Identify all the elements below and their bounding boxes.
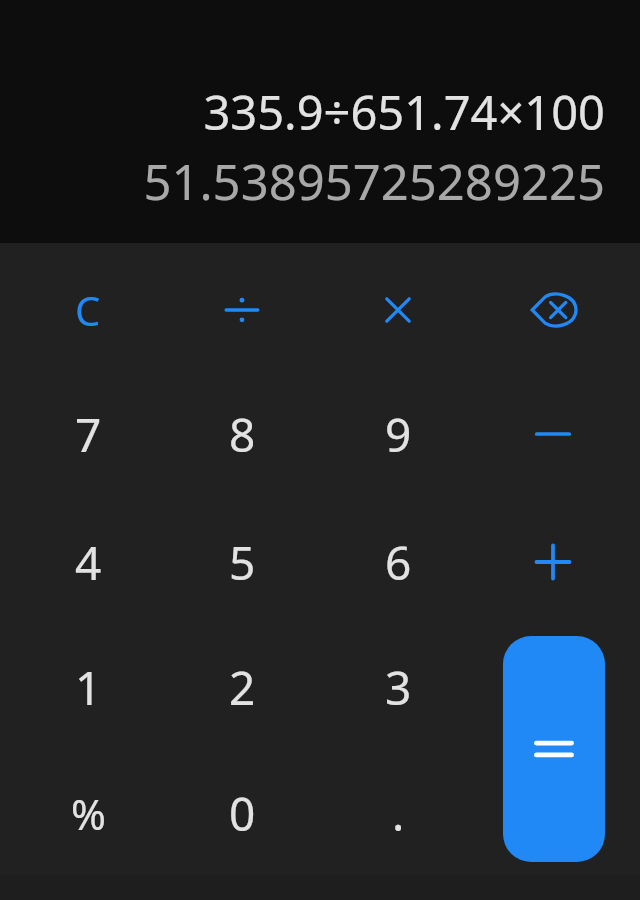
staticText: 2 xyxy=(229,656,256,719)
staticText: 9 xyxy=(385,403,412,466)
button[interactable]: 5 xyxy=(167,506,317,618)
staticText: C xyxy=(75,283,101,337)
button[interactable]: Backspace xyxy=(478,254,628,366)
button[interactable]: 2 xyxy=(167,631,317,743)
staticText: 3 xyxy=(385,656,412,719)
button[interactable]: 1 xyxy=(13,631,163,743)
button[interactable]: Minus xyxy=(478,378,628,490)
button[interactable]: 0 xyxy=(167,757,317,869)
staticText: 4 xyxy=(75,531,102,594)
staticText: % xyxy=(71,785,106,842)
button[interactable]: 9 xyxy=(323,378,473,490)
staticText: 8 xyxy=(229,403,256,466)
button[interactable]: 7 xyxy=(13,378,163,490)
staticText: 1 xyxy=(75,656,102,719)
button[interactable]: Plus xyxy=(478,506,628,618)
staticText: 51.53895725289225 xyxy=(16,148,605,215)
button[interactable]: 3 xyxy=(323,631,473,743)
button[interactable]: C xyxy=(13,254,163,366)
staticText: 6 xyxy=(385,531,412,594)
staticText: . xyxy=(392,782,405,845)
button[interactable]: Equals xyxy=(503,636,605,862)
staticText: 7 xyxy=(75,403,102,466)
button[interactable]: 8 xyxy=(167,378,317,490)
staticText: 0 xyxy=(229,782,256,845)
staticText: 335.9÷651.74×100 xyxy=(16,80,605,144)
button[interactable]: Divide xyxy=(167,254,317,366)
button[interactable]: 4 xyxy=(13,506,163,618)
button[interactable]: Multiply xyxy=(323,254,473,366)
button[interactable]: 6 xyxy=(323,506,473,618)
button[interactable]: . xyxy=(323,757,473,869)
button[interactable]: % xyxy=(13,757,163,869)
staticText: 5 xyxy=(229,531,256,594)
